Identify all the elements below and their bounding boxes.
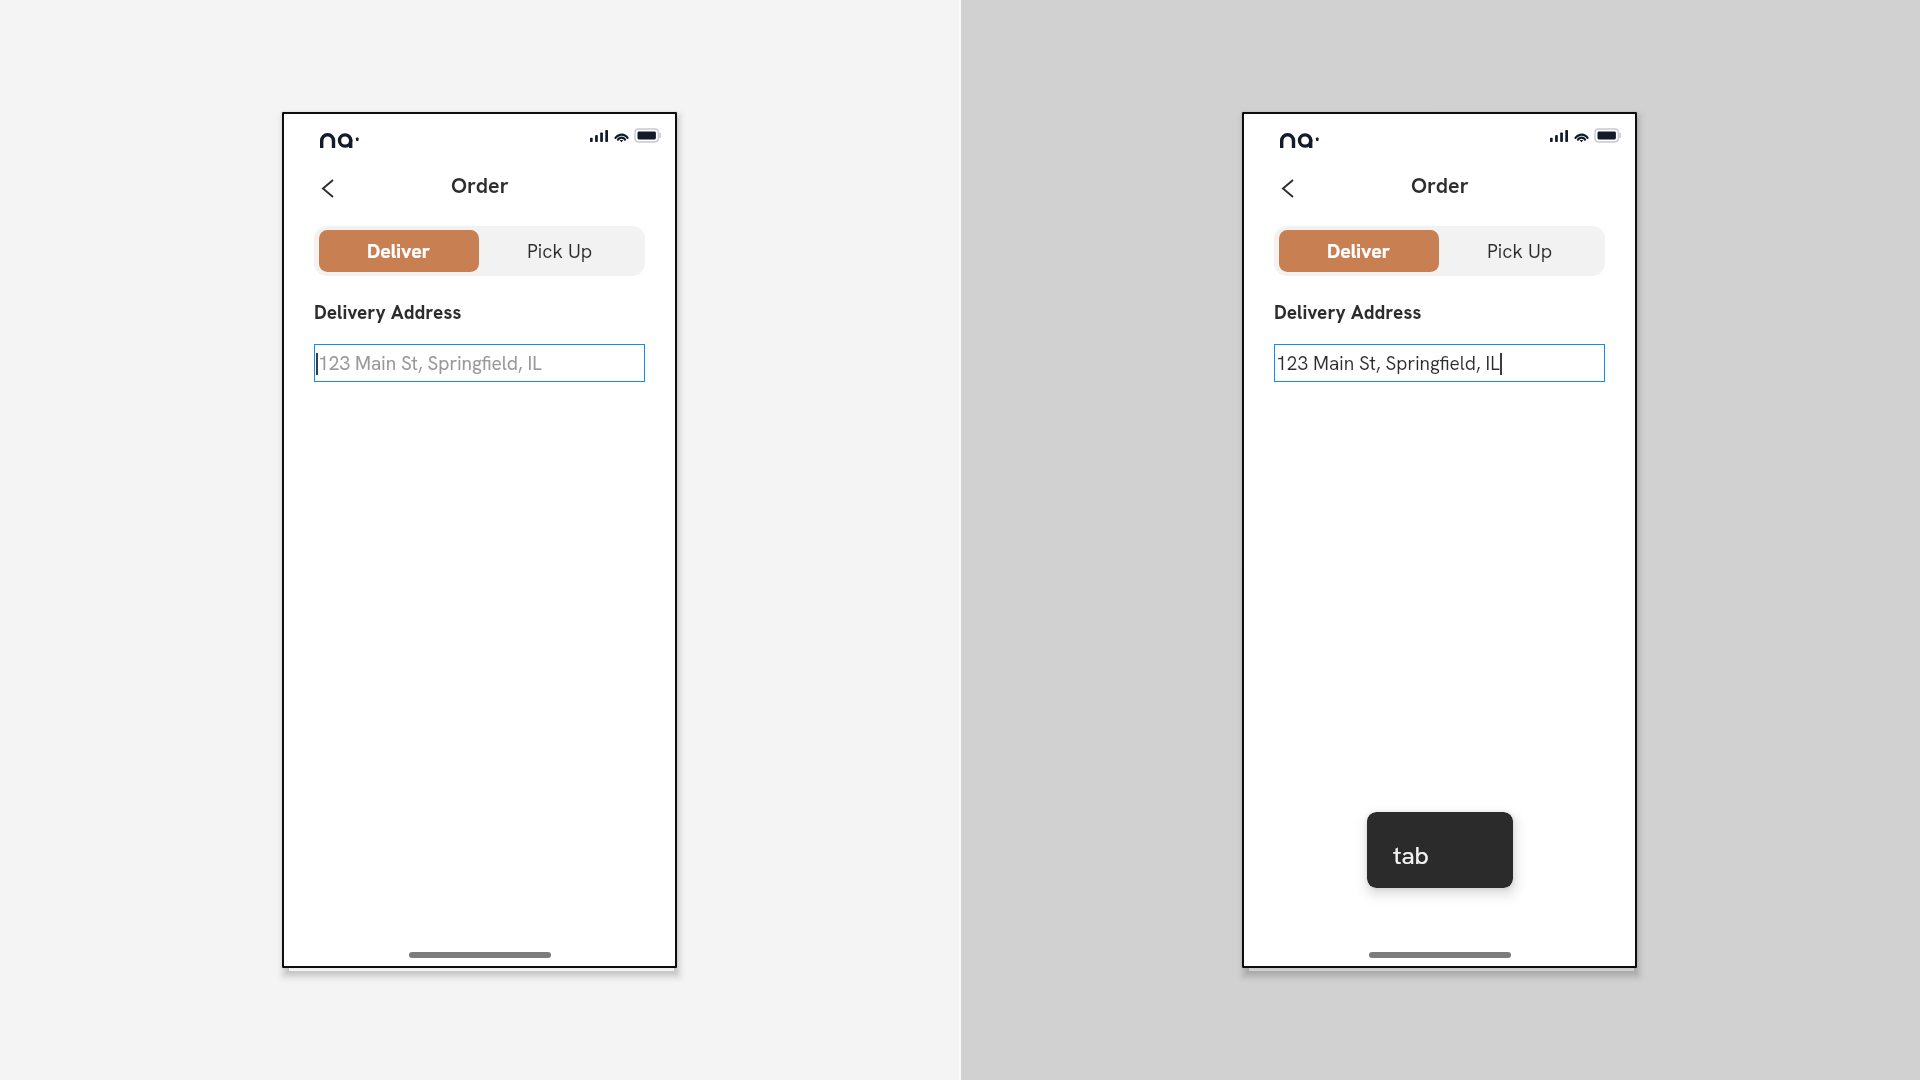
staticText: 123 Main St, Springfield, IL	[1276, 351, 1500, 376]
staticText: 123 Main St, Springfield, IL	[318, 351, 542, 376]
staticText: Pick Up	[1487, 238, 1553, 264]
button[interactable]: 123 Main St, Springfield, IL	[1274, 344, 1605, 382]
staticText: Delivery Address	[314, 300, 462, 325]
staticText: tab	[1393, 840, 1429, 872]
staticText: Pick Up	[527, 238, 593, 264]
staticText: Delivery Address	[1274, 300, 1422, 325]
button[interactable]: Back	[1268, 168, 1308, 208]
staticText: Deliver	[367, 238, 431, 264]
button[interactable]: 123 Main St, Springfield, IL	[314, 344, 645, 382]
button[interactable]: Deliver	[1279, 230, 1439, 272]
button[interactable]: Pick Up	[1439, 230, 1600, 272]
button[interactable]: Back	[308, 168, 348, 208]
staticText: Deliver	[1327, 238, 1391, 264]
button[interactable]: Deliver	[319, 230, 479, 272]
button[interactable]: tab	[1367, 812, 1513, 888]
staticText: Order	[1411, 171, 1469, 199]
button[interactable]: Pick Up	[479, 230, 640, 272]
staticText: Order	[451, 171, 509, 199]
